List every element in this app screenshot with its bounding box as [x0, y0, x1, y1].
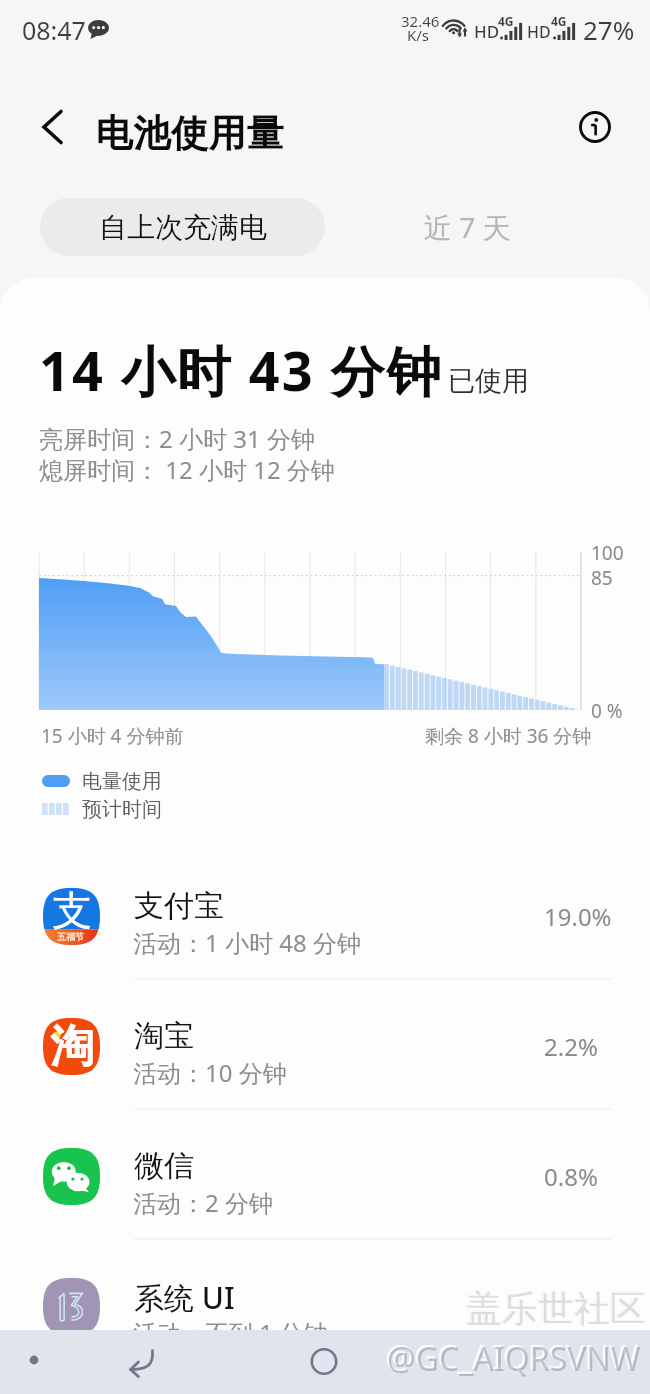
button[interactable]: 微信: [0, 1110, 650, 1240]
staticText: 活动：2 分钟: [133, 1186, 273, 1219]
staticText: 19.0%: [544, 900, 612, 933]
staticText: 预计时间: [82, 797, 162, 822]
button[interactable]: 近 7 天: [355, 198, 580, 256]
staticText: 2.2%: [544, 1030, 598, 1063]
staticText: 14 小时 43 分钟: [39, 333, 443, 407]
staticText: 85: [591, 565, 613, 591]
staticText: 已使用: [448, 364, 529, 398]
staticText: 活动：1 小时 48 分钟: [133, 926, 361, 959]
staticText: 08:47: [22, 13, 86, 47]
staticText: 电量使用: [82, 769, 162, 794]
staticText: 0.8%: [544, 1160, 598, 1193]
staticText: 活动：不到 1 分钟: [133, 1316, 328, 1349]
staticText: 支: [52, 888, 92, 935]
staticText: HD: [474, 20, 500, 43]
button[interactable]: Recents: [14, 1340, 54, 1380]
staticText: 自上次充满电: [99, 210, 267, 245]
staticText: 4G: [498, 13, 514, 29]
staticText: 电池使用量: [95, 110, 284, 157]
staticText: K/s: [407, 25, 430, 45]
staticText: 15 小时 4 分钟前: [41, 723, 184, 749]
staticText: 熄屏时间： 12 小时 12 分钟: [39, 453, 335, 486]
staticText: 4G: [551, 13, 567, 29]
staticText: @GC_AIQRSVNW: [385, 1335, 639, 1379]
staticText: 系统 UI: [134, 1277, 235, 1318]
button[interactable]: 自上次充满电: [40, 198, 325, 256]
staticText: 0 %: [591, 698, 623, 724]
button[interactable]: Back: [28, 100, 78, 150]
staticText: 32.46: [401, 11, 440, 31]
staticText: 支付宝: [134, 887, 224, 925]
button[interactable]: Back: [115, 1336, 167, 1388]
staticText: 淘宝: [134, 1017, 194, 1055]
staticText: 盖乐世社区: [464, 1285, 644, 1330]
staticText: 近 7 天: [424, 208, 511, 246]
button[interactable]: 淘: [0, 980, 650, 1110]
staticText: 淘: [50, 1019, 94, 1074]
staticText: 亮屏时间：2 小时 31 分钟: [39, 422, 315, 455]
staticText: 五福节: [57, 931, 84, 942]
button[interactable]: Home: [298, 1336, 350, 1388]
staticText: HD: [527, 21, 551, 43]
staticText: 微信: [134, 1147, 194, 1185]
staticText: 盖乐世社区: [466, 1286, 646, 1331]
staticText: 100: [591, 540, 624, 566]
button[interactable]: 支: [0, 850, 650, 980]
staticText: 27%: [583, 12, 635, 47]
staticText: 活动：10 分钟: [133, 1056, 287, 1089]
staticText: 剩余 8 小时 36 分钟: [425, 723, 592, 749]
staticText: @GC_AIQRSVNW: [387, 1337, 641, 1381]
button[interactable]: Information: [570, 103, 620, 153]
button[interactable]: 系统 UI: [0, 1240, 650, 1370]
